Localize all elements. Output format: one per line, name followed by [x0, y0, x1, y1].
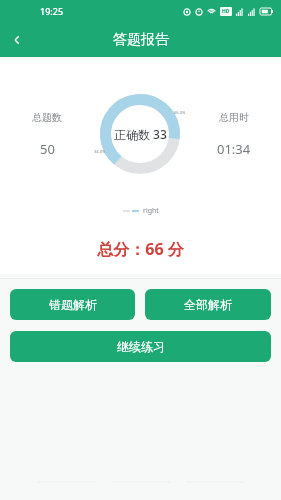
button[interactable]: 全部解析 — [145, 289, 271, 320]
staticText: 19:25 — [40, 5, 64, 17]
staticText: 答题报告 — [113, 31, 169, 49]
staticText: right — [143, 206, 159, 216]
staticText: 继续练习 — [117, 339, 165, 354]
staticText: 全部解析 — [184, 297, 232, 312]
staticText: 总题数 — [32, 111, 62, 124]
staticText: 总分：66 分 — [0, 238, 281, 260]
staticText: 总用时 — [219, 111, 249, 124]
button[interactable]: Back — [0, 23, 34, 57]
staticText: HD — [222, 8, 230, 15]
staticText: 66.0% — [174, 110, 186, 115]
staticText: 正确数 33 — [114, 126, 167, 142]
staticText: 01:34 — [217, 140, 251, 158]
staticText: 50 — [40, 140, 55, 158]
button[interactable]: 错题解析 — [10, 289, 135, 320]
staticText: 错题解析 — [49, 297, 97, 312]
staticText: 34.0% — [94, 149, 106, 154]
button[interactable]: 继续练习 — [10, 331, 271, 362]
